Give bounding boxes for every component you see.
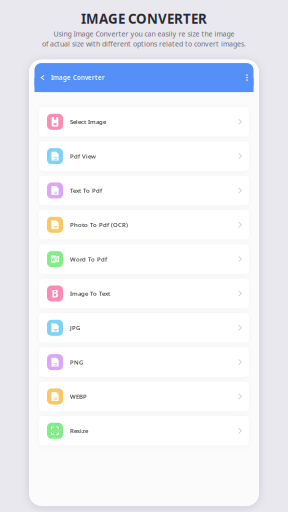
staticText: Select Image [70,118,106,126]
staticText: Photo To Pdf (OCR) [70,221,128,229]
button[interactable]: Back [37,72,47,83]
staticText: B [51,286,58,301]
button[interactable]: Select Image [39,107,249,136]
staticText: WEBP [70,392,87,400]
button[interactable]: Pdf View [39,141,249,171]
button[interactable]: Photo To Pdf (OCR) [39,210,249,239]
staticText: JPG [70,324,80,332]
button[interactable]: PNG [39,347,249,377]
staticText: Text To Pdf [70,186,102,195]
staticText: of actual size with different options re… [42,39,246,48]
button[interactable]: Resize [39,416,249,445]
button[interactable]: More options [243,71,251,83]
staticText: Image Converter [51,73,105,82]
button[interactable]: B [39,279,249,308]
staticText: Pdf View [70,152,96,160]
button[interactable]: Word To Pdf [39,244,249,274]
staticText: Resize [70,427,88,435]
button[interactable]: WEBP [39,382,249,411]
staticText: IMAGE CONVERTER [81,9,207,28]
button[interactable]: JPG [39,313,249,342]
button[interactable]: Text To Pdf [39,176,249,205]
staticText: Using Image Converter you can easily re … [53,29,234,39]
staticText: Word To Pdf [70,255,107,263]
staticText: Image To Text [70,289,110,298]
staticText: PNG [70,358,83,366]
